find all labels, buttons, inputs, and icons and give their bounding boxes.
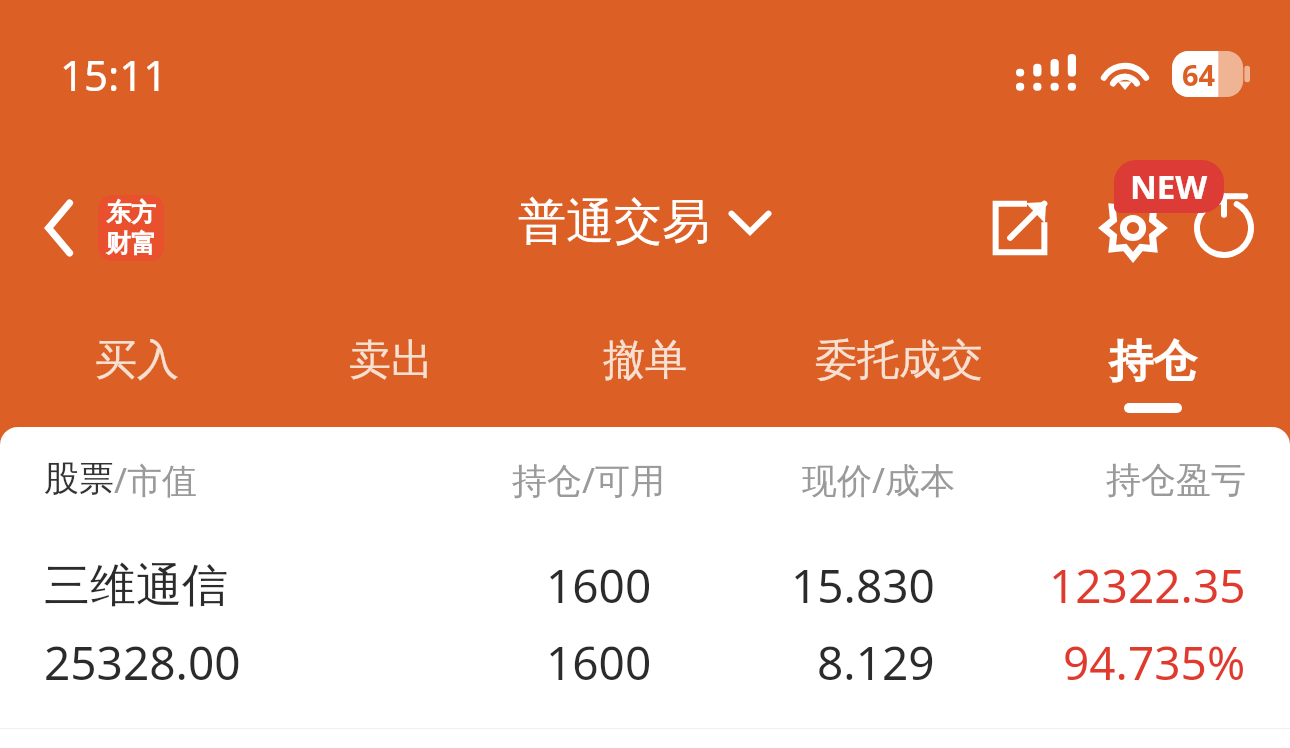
button[interactable]: 三维通信	[0, 532, 1290, 728]
staticText: 股票	[44, 456, 114, 500]
button[interactable]: 普通交易	[518, 192, 772, 252]
staticText: 持仓盈亏	[1106, 458, 1246, 502]
button[interactable]: Share	[980, 188, 1060, 268]
staticText: 卖出	[349, 334, 433, 387]
staticText: /市值	[114, 456, 198, 504]
staticText: NEW	[1130, 164, 1208, 209]
button[interactable]: Refresh	[1182, 186, 1266, 270]
staticText: 64	[1182, 55, 1216, 94]
staticText: 撤单	[603, 334, 687, 387]
staticText: 12322.35	[1049, 554, 1246, 617]
staticText: 现价/成本	[802, 456, 956, 504]
staticText: 1600	[546, 631, 652, 694]
staticText: 财富	[106, 228, 156, 259]
staticText: 94.735%	[1063, 631, 1246, 694]
button[interactable]: Back	[22, 190, 98, 266]
staticText: 委托成交	[815, 334, 983, 387]
button[interactable]: 买入	[10, 308, 264, 427]
staticText: 15.830	[791, 554, 935, 617]
staticText: 持仓/可用	[512, 456, 666, 504]
button[interactable]: 卖出	[264, 308, 518, 427]
staticText: 持仓	[1109, 334, 1197, 389]
button[interactable]: 撤单	[518, 308, 772, 427]
button[interactable]: 东方财富	[98, 195, 164, 261]
staticText: 8.129	[817, 631, 935, 694]
button[interactable]: 持仓	[1026, 308, 1280, 427]
staticText: 15:11	[60, 46, 168, 103]
button[interactable]: Settings	[1091, 186, 1175, 270]
staticText: 1600	[546, 554, 652, 617]
staticText: 买入	[95, 334, 179, 387]
staticText: 三维通信	[44, 557, 228, 615]
staticText: 25328.00	[44, 631, 241, 694]
staticText: 东方	[106, 197, 156, 228]
staticText: 普通交易	[518, 192, 710, 252]
button[interactable]: 委托成交	[772, 308, 1026, 427]
